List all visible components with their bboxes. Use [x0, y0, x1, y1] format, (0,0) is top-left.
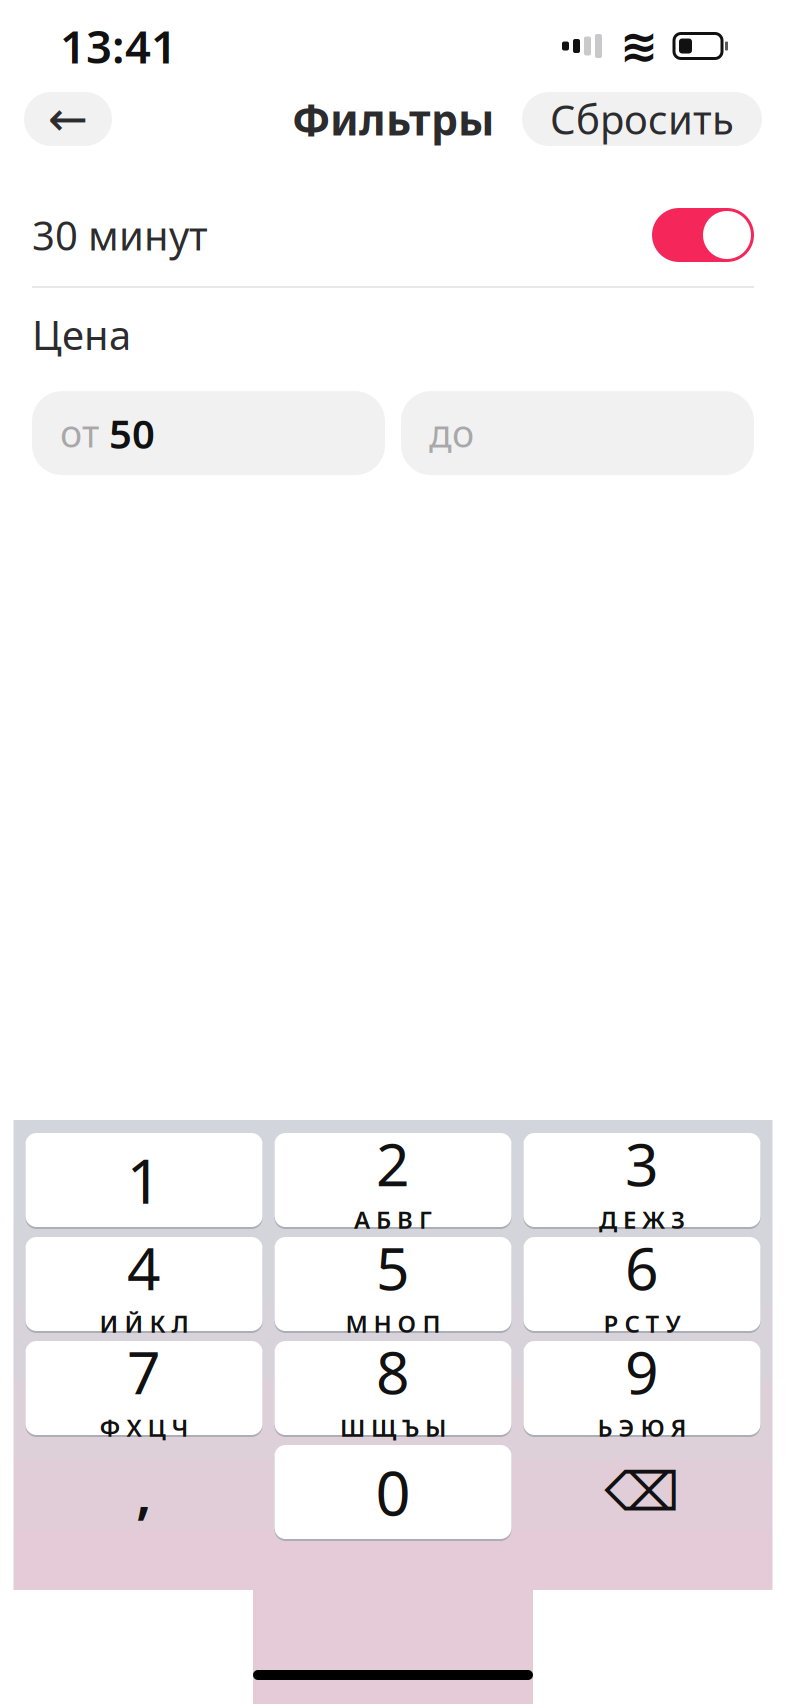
- staticText: 13:41: [60, 16, 177, 76]
- staticText: 5: [376, 1229, 410, 1306]
- button[interactable]: Delete: [523, 1443, 760, 1541]
- button[interactable]: 3: [523, 1131, 760, 1229]
- staticText: 30 минут: [32, 208, 208, 261]
- staticText: 4: [127, 1229, 161, 1306]
- staticText: ⌫: [604, 1462, 679, 1522]
- button[interactable]: Сбросить: [522, 92, 762, 146]
- staticText: Ф Х Ц Ч: [99, 1411, 188, 1443]
- button[interactable]: 9: [523, 1339, 760, 1437]
- button[interactable]: 30 минут, on: [652, 208, 754, 262]
- staticText: 1: [126, 1139, 161, 1221]
- button[interactable]: 5: [274, 1235, 511, 1333]
- button[interactable]: 1: [25, 1131, 262, 1229]
- staticText: от: [60, 408, 99, 458]
- staticText: Фильтры: [292, 91, 494, 147]
- staticText: 7: [127, 1333, 161, 1410]
- button[interactable]: Comma: [25, 1443, 262, 1541]
- staticText: М Н О П: [345, 1307, 440, 1339]
- staticText: 50: [109, 407, 155, 460]
- button[interactable]: от: [32, 391, 385, 475]
- button[interactable]: 2: [274, 1131, 511, 1229]
- staticText: Ь Э Ю Я: [597, 1411, 686, 1443]
- staticText: Сбросить: [550, 92, 734, 145]
- staticText: 2: [376, 1125, 410, 1202]
- staticText: 3: [625, 1125, 659, 1202]
- button[interactable]: 6: [523, 1235, 760, 1333]
- staticText: до: [429, 408, 474, 458]
- button[interactable]: до: [401, 391, 754, 475]
- button[interactable]: Back: [24, 92, 112, 146]
- button[interactable]: 4: [25, 1235, 262, 1333]
- staticText: Цена: [32, 308, 131, 361]
- staticText: Ш Щ Ъ Ы: [340, 1411, 446, 1443]
- staticText: Д Е Ж З: [599, 1203, 685, 1235]
- staticText: 8: [376, 1333, 410, 1410]
- staticText: ,: [136, 1455, 152, 1529]
- staticText: А Б В Г: [354, 1203, 432, 1235]
- staticText: ←: [48, 92, 88, 146]
- staticText: Р С Т У: [603, 1307, 680, 1339]
- staticText: 0: [375, 1451, 410, 1533]
- staticText: ≋: [620, 20, 658, 72]
- staticText: И Й К Л: [99, 1307, 188, 1339]
- staticText: 6: [625, 1229, 659, 1306]
- button[interactable]: 7: [25, 1339, 262, 1437]
- button[interactable]: 0: [274, 1443, 511, 1541]
- button[interactable]: 8: [274, 1339, 511, 1437]
- staticText: 9: [625, 1333, 659, 1410]
